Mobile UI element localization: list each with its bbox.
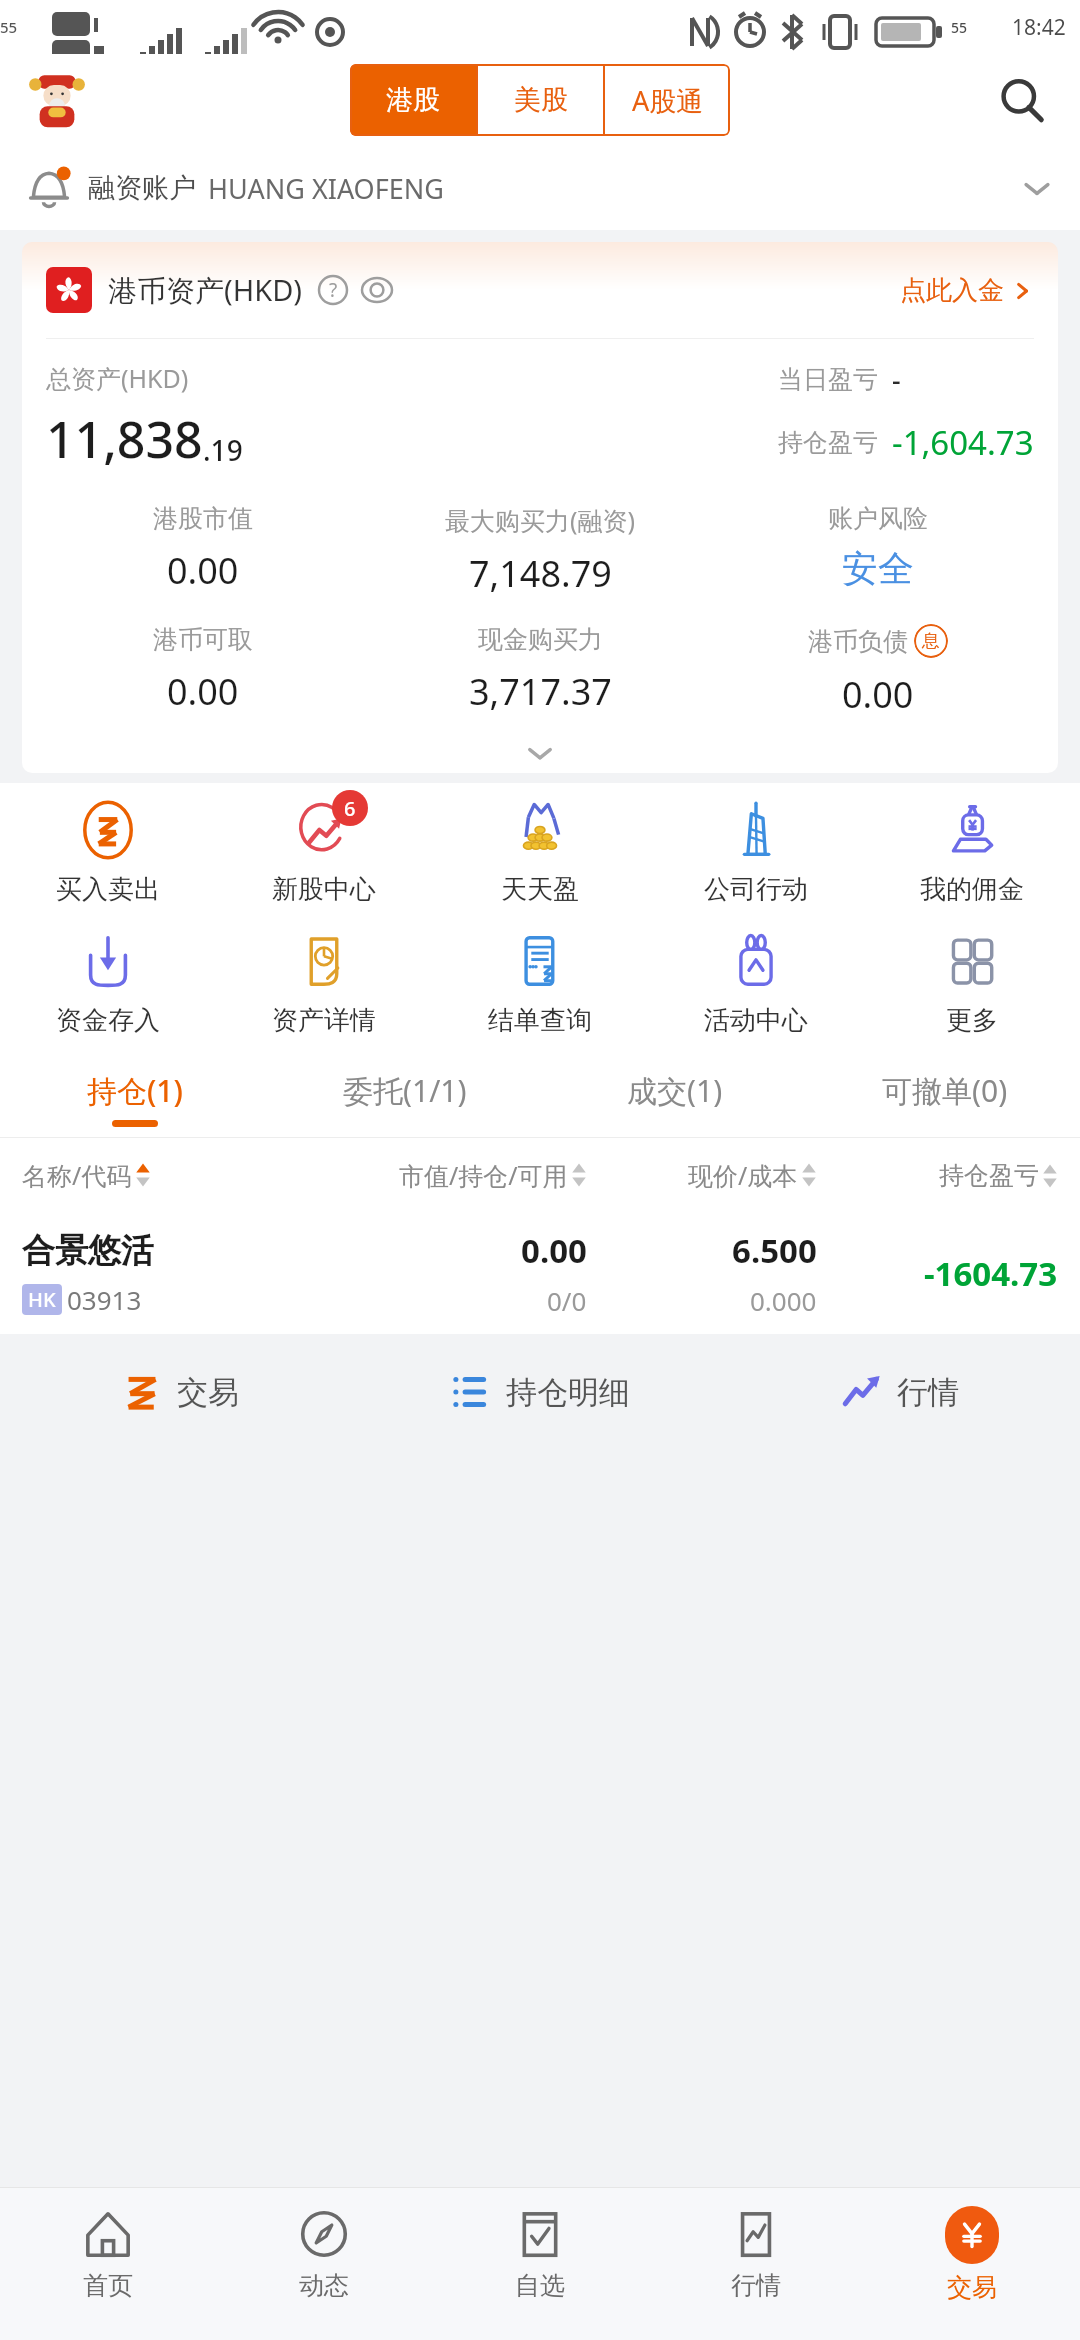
staticText: -1604.73 <box>924 1251 1058 1296</box>
staticText: 0.00 <box>167 546 239 595</box>
staticText: 点此入金 <box>900 274 1004 307</box>
staticText: 当日盈亏 <box>778 364 878 395</box>
staticText: 新股中心 <box>272 873 376 906</box>
staticText: 我的佣金 <box>920 873 1024 906</box>
button[interactable]: 动态 <box>216 2188 432 2340</box>
button[interactable]: 可撤单(0) <box>810 1059 1080 1137</box>
staticText: 55 <box>951 18 968 37</box>
staticText: 6.500 <box>732 1228 817 1273</box>
button[interactable]: Profile avatar <box>26 69 88 131</box>
staticText: 0.000 <box>750 1283 817 1318</box>
button[interactable]: 合景悠活 <box>0 1212 1080 1334</box>
staticText: 持仓(1) <box>87 1070 183 1111</box>
button[interactable]: 现价/成本 <box>587 1158 817 1192</box>
staticText: 结单查询 <box>488 1004 592 1037</box>
staticText: 资产详情 <box>272 1004 376 1037</box>
button[interactable]: 6 <box>216 797 432 910</box>
staticText: 港币负债 <box>808 626 908 657</box>
staticText: 持仓盈亏 <box>939 1160 1039 1191</box>
button[interactable]: 结单查询 <box>432 928 648 1041</box>
staticText: 现金购买力 <box>478 624 603 655</box>
button[interactable]: 点此入金 <box>900 274 1034 307</box>
staticText: 安全 <box>842 546 914 591</box>
staticText: 7,148.79 <box>469 549 612 598</box>
staticText: 总资产(HKD) <box>46 361 189 395</box>
button[interactable]: 公司行动 <box>648 797 864 910</box>
button[interactable]: 资产详情 <box>216 928 432 1041</box>
button[interactable]: 持仓明细 <box>360 1334 720 1450</box>
staticText: 港币可取 <box>153 624 253 655</box>
button[interactable]: 名称/代码 <box>22 1158 269 1192</box>
staticText: 持仓盈亏 <box>778 427 878 458</box>
button[interactable]: 资金存入 <box>0 928 216 1041</box>
staticText: 18:42 <box>1012 13 1066 42</box>
staticText: 账户风险 <box>828 503 928 534</box>
staticText: 更多 <box>946 1004 998 1037</box>
staticText: ? <box>329 277 338 303</box>
staticText: -1,604.73 <box>892 420 1034 465</box>
staticText: 成交(1) <box>627 1070 723 1111</box>
staticText: 现价/成本 <box>688 1158 798 1192</box>
button[interactable]: 自选 <box>432 2188 648 2340</box>
staticText: 港币资产(HKD) <box>108 270 303 310</box>
button[interactable]: Help <box>317 274 349 306</box>
button[interactable]: 成交(1) <box>540 1059 810 1137</box>
button[interactable]: A股通 <box>605 64 730 136</box>
staticText: 动态 <box>299 2270 349 2301</box>
staticText: 资金存入 <box>56 1004 160 1037</box>
button[interactable]: 委托(1/1) <box>270 1059 540 1137</box>
staticText: A股通 <box>632 82 704 119</box>
staticText: - <box>892 361 901 398</box>
staticText: 自选 <box>515 2270 565 2301</box>
button[interactable]: 行情 <box>648 2188 864 2340</box>
staticText: 持仓明细 <box>506 1373 630 1412</box>
staticText: 最大购买力(融资) <box>445 503 636 537</box>
staticText: 可撤单(0) <box>882 1070 1008 1111</box>
button[interactable]: 持仓(1) <box>0 1059 270 1137</box>
staticText: 首页 <box>83 2270 133 2301</box>
button[interactable]: 融资账户 <box>0 146 1080 230</box>
staticText: 0.00 <box>521 1228 587 1273</box>
staticText: 行情 <box>897 1373 959 1412</box>
staticText: 0.00 <box>167 667 239 716</box>
staticText: HK <box>28 1286 56 1313</box>
button[interactable]: 市值/持仓/可用 <box>269 1158 587 1192</box>
button[interactable]: 持仓盈亏 <box>817 1160 1058 1191</box>
button[interactable]: 天天盈 <box>432 797 648 910</box>
staticText: 55 <box>0 17 18 37</box>
staticText: 3,717.37 <box>469 667 612 716</box>
staticText: 11,838 <box>46 405 203 473</box>
staticText: HUANG XIAOFENG <box>208 170 444 207</box>
button[interactable]: 港股 <box>350 64 476 136</box>
staticText: 市值/持仓/可用 <box>399 1158 568 1192</box>
button[interactable]: 首页 <box>0 2188 216 2340</box>
staticText: 合景悠活 <box>22 1230 154 1272</box>
staticText: 买入卖出 <box>56 873 160 906</box>
button[interactable]: 买入卖出 <box>0 797 216 910</box>
button[interactable]: 交易 <box>0 1334 360 1450</box>
staticText: 美股 <box>514 83 568 117</box>
button[interactable]: 更多 <box>864 928 1080 1041</box>
button[interactable]: Toggle visibility <box>361 274 393 306</box>
staticText: 行情 <box>731 2270 781 2301</box>
staticText: 委托(1/1) <box>343 1070 467 1111</box>
staticText: 0/0 <box>547 1283 587 1318</box>
staticText: 公司行动 <box>704 873 808 906</box>
staticText: 6 <box>344 795 356 822</box>
staticText: 交易 <box>947 2272 997 2303</box>
staticText: 港股 <box>386 83 440 117</box>
button[interactable]: 活动中心 <box>648 928 864 1041</box>
button[interactable]: 我的佣金 <box>864 797 1080 910</box>
button[interactable]: 交易 <box>864 2188 1080 2340</box>
button[interactable]: Expand <box>22 733 1058 773</box>
button[interactable]: 行情 <box>720 1334 1080 1450</box>
staticText: 活动中心 <box>704 1004 808 1037</box>
button[interactable]: 美股 <box>478 64 603 136</box>
staticText: 名称/代码 <box>22 1158 132 1192</box>
staticText: 0.00 <box>842 670 914 719</box>
staticText: 天天盈 <box>501 873 579 906</box>
staticText: 港股市值 <box>153 503 253 534</box>
staticText: .19 <box>203 431 243 469</box>
button[interactable]: Search <box>990 68 1054 132</box>
staticText: 融资账户 <box>88 171 196 205</box>
